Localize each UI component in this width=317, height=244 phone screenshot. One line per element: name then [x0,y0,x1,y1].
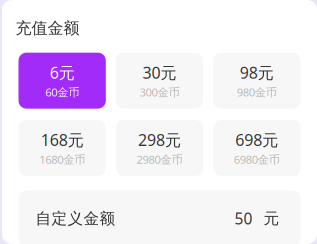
button[interactable]: 6元 [18,53,106,109]
staticText: 980金币 [237,84,277,100]
button[interactable]: 自定义金额 [18,191,300,244]
button[interactable]: 168元 [18,120,106,176]
button[interactable]: 298元 [116,120,203,176]
staticText: 50 [234,208,252,229]
staticText: 300金币 [139,84,179,100]
staticText: 6元 [50,61,75,83]
staticText: 60金币 [45,84,79,100]
staticText: 元 [263,209,279,228]
staticText: 298元 [138,129,181,151]
staticText: 1680金币 [39,152,85,167]
staticText: 6980金币 [234,152,280,167]
staticText: 2980金币 [136,152,182,167]
staticText: 自定义金额 [35,209,115,228]
staticText: 98元 [240,61,274,83]
staticText: 698元 [235,129,278,151]
staticText: 30元 [142,61,176,83]
staticText: 充值金额 [15,18,79,38]
button[interactable]: 698元 [213,120,300,176]
staticText: 168元 [41,129,84,151]
button[interactable]: 30元 [116,53,203,109]
button[interactable]: 98元 [213,53,300,109]
